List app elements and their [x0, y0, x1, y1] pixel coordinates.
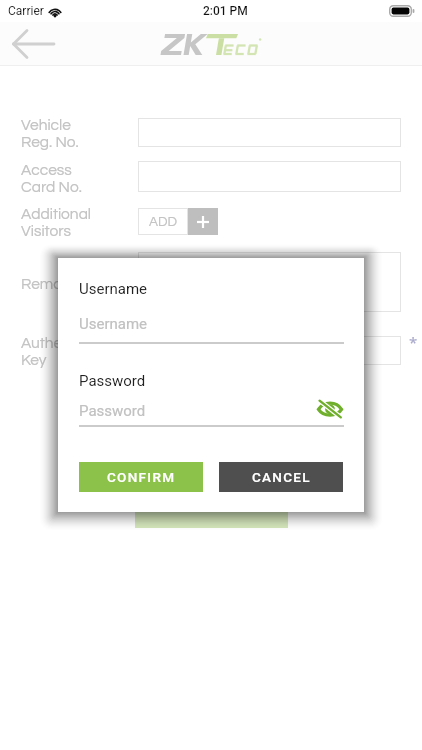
staticText: Remarks: [21, 276, 83, 292]
button[interactable]: ADD: [138, 208, 188, 235]
button[interactable]: CANCEL: [219, 462, 343, 492]
staticText: *: [409, 332, 418, 352]
button[interactable]: [138, 118, 401, 147]
staticText: 2:01 PM: [203, 4, 248, 18]
button[interactable]: CONFIRM: [79, 462, 203, 492]
staticText: Password: [79, 402, 146, 420]
staticText: Vehicle Reg. No.: [21, 117, 79, 151]
button[interactable]: [135, 490, 288, 528]
button[interactable]: [138, 336, 401, 365]
staticText: Username: [79, 315, 148, 333]
staticText: Access Card No.: [21, 162, 82, 196]
staticText: CONFIRM: [107, 469, 176, 485]
staticText: Carrier: [8, 4, 44, 18]
button[interactable]: Add visitor: [188, 208, 218, 235]
staticText: ADD: [149, 215, 177, 229]
button[interactable]: Back: [6, 22, 60, 66]
button[interactable]: [138, 252, 401, 312]
button[interactable]: [138, 161, 401, 192]
staticText: CANCEL: [252, 469, 311, 485]
button[interactable]: Show password: [316, 399, 344, 419]
staticText: Password: [79, 372, 146, 390]
staticText: Additional Visitors: [21, 206, 92, 240]
staticText: Username: [79, 280, 148, 298]
staticText: Authentication Key: [21, 335, 123, 369]
